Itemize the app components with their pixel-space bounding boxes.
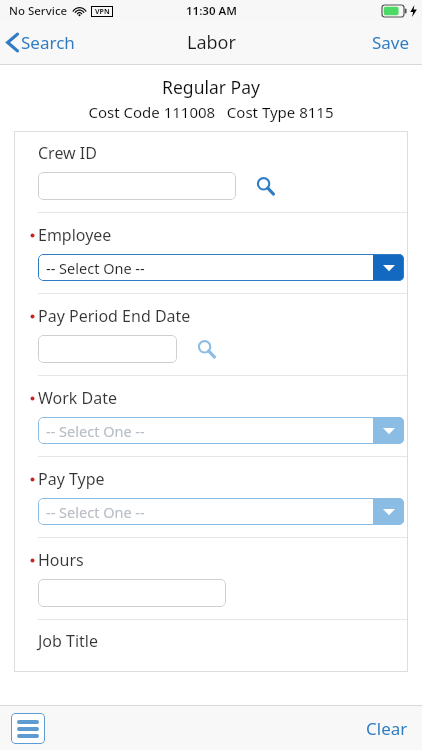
- staticText: Regular Pay: [162, 75, 260, 99]
- button[interactable]: [38, 335, 177, 363]
- staticText: 11:30 AM: [186, 3, 237, 19]
- staticText: -- Select One --: [46, 258, 145, 278]
- button[interactable]: [38, 579, 226, 607]
- staticText: Crew ID: [38, 142, 97, 164]
- staticText: -- Select One --: [46, 421, 145, 441]
- button[interactable]: -- Select One --: [38, 254, 404, 281]
- button[interactable]: Clear: [352, 709, 422, 748]
- button[interactable]: [38, 172, 236, 200]
- staticText: Employee: [38, 224, 112, 246]
- staticText: Search: [21, 31, 75, 54]
- staticText: Labor: [187, 30, 236, 55]
- staticText: Cost Code 111008 Cost Type 8115: [88, 102, 334, 122]
- staticText: Work Date: [38, 387, 118, 409]
- staticText: VPN: [95, 7, 110, 17]
- staticText: No Service: [9, 3, 68, 19]
- staticText: Clear: [366, 717, 408, 740]
- staticText: Hours: [38, 549, 84, 571]
- button[interactable]: Menu: [11, 713, 45, 744]
- button[interactable]: -- Select One --: [38, 498, 404, 525]
- staticText: Save: [372, 31, 410, 54]
- button[interactable]: Search: [252, 173, 278, 199]
- button[interactable]: Search: [193, 336, 219, 362]
- button[interactable]: Save: [360, 23, 422, 62]
- staticText: -- Select One --: [46, 502, 145, 522]
- button[interactable]: -- Select One --: [38, 417, 404, 444]
- button[interactable]: Search: [0, 25, 85, 60]
- staticText: Pay Type: [38, 468, 105, 490]
- staticText: Job Title: [38, 630, 99, 652]
- staticText: Pay Period End Date: [38, 305, 191, 327]
